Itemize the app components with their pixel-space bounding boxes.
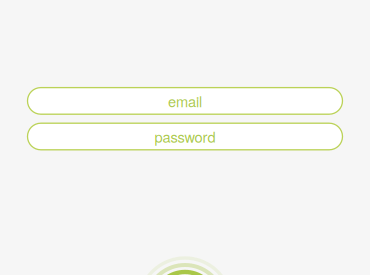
staticText: password [154,126,215,147]
button[interactable]: password [27,123,342,150]
button[interactable]: email [27,88,342,114]
staticText: email [168,90,202,111]
